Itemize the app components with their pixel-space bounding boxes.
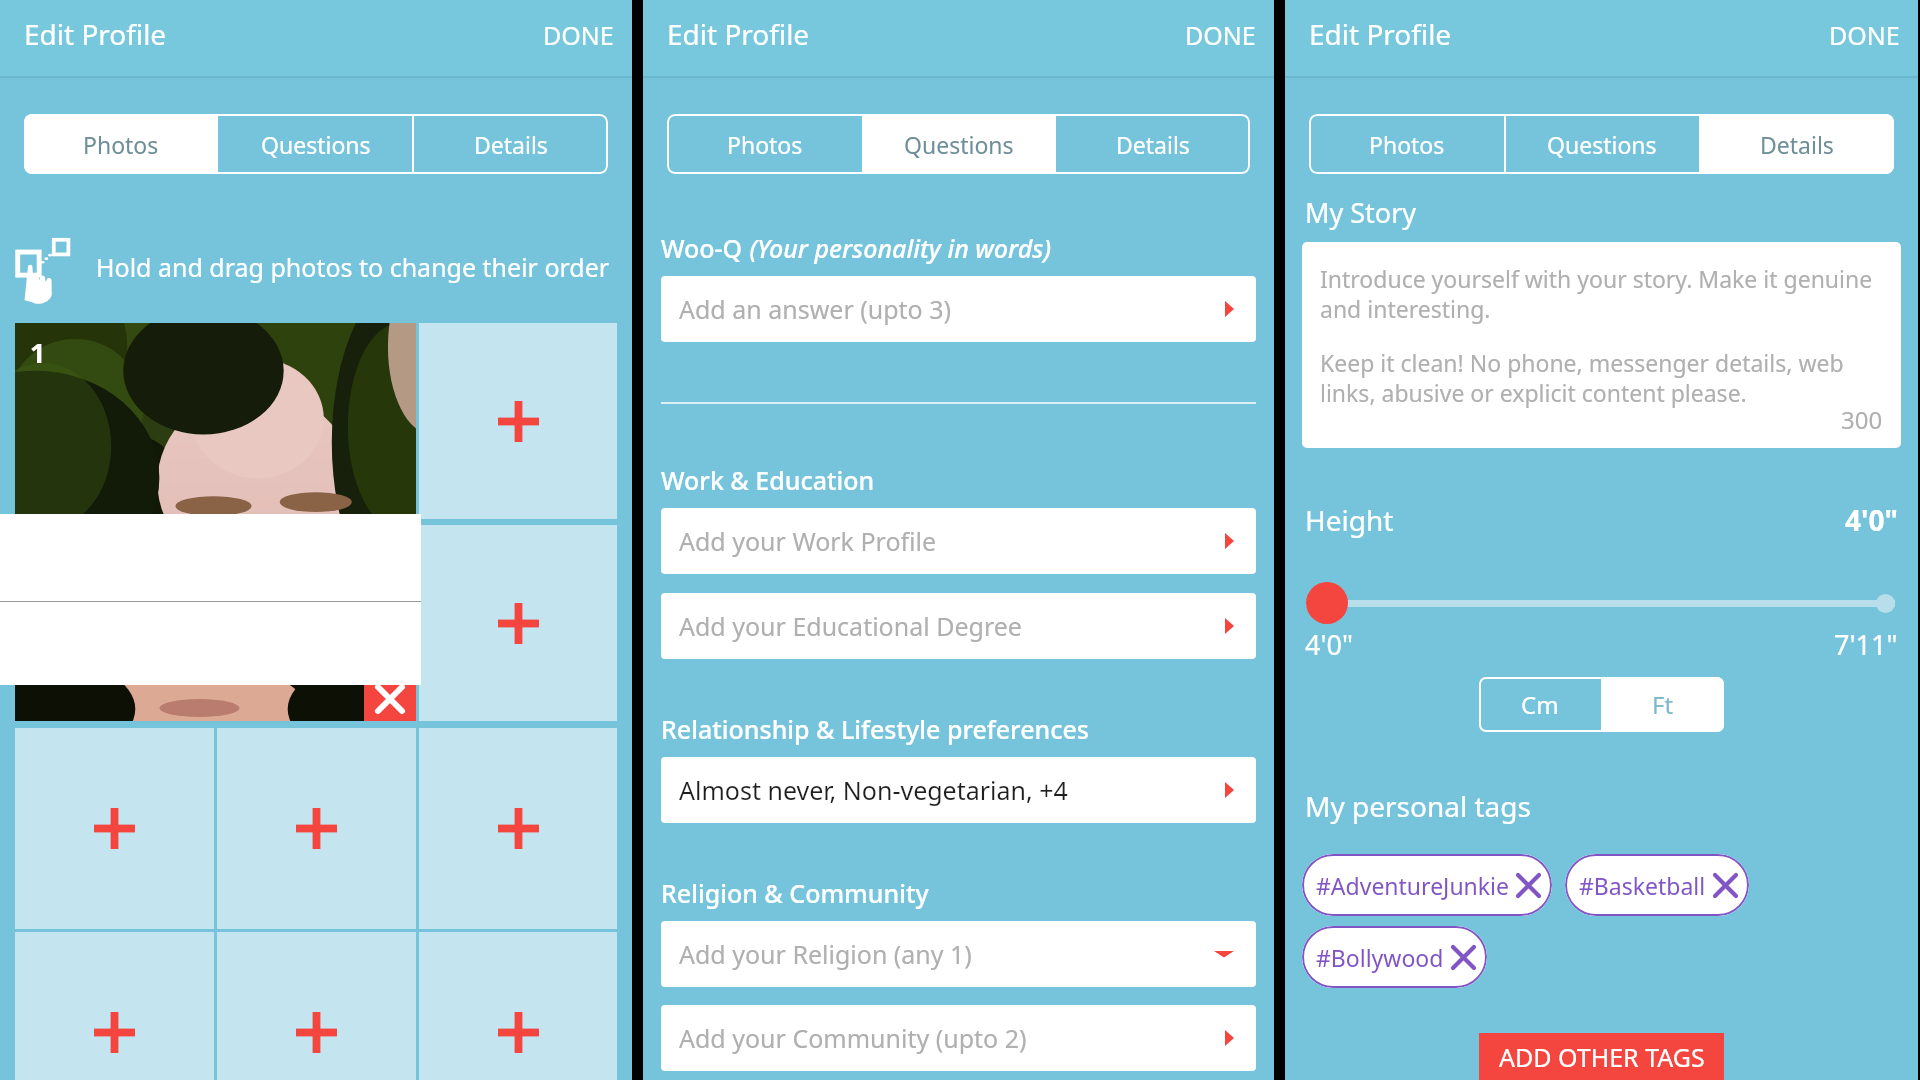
button[interactable]: ADD OTHER TAGS: [1479, 1033, 1724, 1080]
staticText: Add an answer (upto 3): [679, 292, 1225, 326]
staticText: Work & Education: [661, 463, 875, 497]
staticText: Edit Profile: [24, 15, 167, 53]
staticText: Add your Educational Degree: [679, 609, 1225, 643]
button[interactable]: #Bollywood: [1302, 926, 1487, 988]
button[interactable]: Remove photo: [364, 676, 416, 721]
staticText: 7'11": [1834, 626, 1898, 663]
button[interactable]: Questions: [218, 114, 413, 174]
button[interactable]: #Basketball: [1565, 854, 1749, 916]
staticText: Add your Work Profile: [679, 524, 1225, 558]
button[interactable]: DONE: [517, 0, 632, 78]
staticText: 4'0": [1305, 626, 1353, 663]
staticText: Add your Community (upto 2): [679, 1021, 1225, 1055]
staticText: Questions: [904, 129, 1014, 160]
button[interactable]: Add photo: [419, 323, 617, 519]
staticText: Details: [474, 129, 548, 160]
staticText: Details: [1760, 129, 1834, 160]
button[interactable]: Questions: [862, 114, 1056, 174]
staticText: Questions: [261, 129, 371, 160]
button[interactable]: Add your Work Profile: [661, 508, 1256, 574]
button[interactable]: DONE: [1159, 0, 1274, 78]
button[interactable]: Ft: [1601, 677, 1724, 732]
staticText: #AdventureJunkie: [1316, 870, 1509, 901]
button[interactable]: Details: [413, 114, 608, 174]
staticText: Height: [1305, 501, 1394, 539]
button[interactable]: Add an answer (upto 3): [661, 276, 1256, 342]
staticText: Photos: [83, 129, 159, 160]
staticText: (Your personality in words): [743, 231, 1052, 265]
staticText: Add your Religion (any 1): [679, 937, 1214, 971]
button[interactable]: Add photo: [419, 525, 617, 721]
staticText: #Basketball: [1579, 870, 1706, 901]
button[interactable]: Details: [1699, 114, 1894, 174]
staticText: Hold and drag photos to change their ord…: [96, 250, 610, 284]
staticText: ADD OTHER TAGS: [1499, 1040, 1705, 1074]
button[interactable]: Add photo: [217, 728, 416, 929]
staticText: 1: [30, 334, 46, 371]
button[interactable]: Photos: [1309, 114, 1504, 174]
staticText: Introduce yourself with your story. Make…: [1320, 263, 1887, 325]
staticText: Edit Profile: [667, 15, 810, 53]
button[interactable]: Add photo: [15, 932, 214, 1080]
staticText: My personal tags: [1305, 787, 1531, 825]
staticText: Photos: [727, 129, 803, 160]
staticText: My Story: [1305, 194, 1417, 231]
button[interactable]: 1: [15, 323, 416, 721]
staticText: 300: [1841, 403, 1883, 436]
button[interactable]: #AdventureJunkie: [1302, 854, 1552, 916]
staticText: #Bollywood: [1316, 942, 1444, 973]
button[interactable]: Almost never, Non-vegetarian, +4: [661, 757, 1256, 823]
staticText: Cm: [1521, 688, 1559, 721]
button[interactable]: Add photo: [419, 728, 617, 929]
button[interactable]: Cm: [1479, 677, 1601, 732]
button[interactable]: Add your Educational Degree: [661, 593, 1256, 659]
staticText: 4'0": [1845, 501, 1898, 539]
staticText: Religion & Community: [661, 876, 929, 910]
staticText: Woo-Q: [661, 231, 743, 265]
staticText: DONE: [1829, 18, 1900, 52]
button[interactable]: Add your Religion (any 1): [661, 921, 1256, 987]
staticText: Photos: [1369, 129, 1445, 160]
staticText: DONE: [1185, 18, 1256, 52]
button[interactable]: Add photo: [419, 932, 617, 1080]
staticText: DONE: [543, 18, 614, 52]
staticText: Details: [1116, 129, 1190, 160]
staticText: Keep it clean! No phone, messenger detai…: [1320, 347, 1887, 409]
staticText: Questions: [1547, 129, 1657, 160]
button[interactable]: Height slider: [1306, 582, 1348, 624]
button[interactable]: Questions: [1504, 114, 1699, 174]
staticText: Relationship & Lifestyle preferences: [661, 712, 1089, 746]
staticText: Ft: [1652, 688, 1674, 721]
button[interactable]: Introduce yourself with your story. Make…: [1302, 242, 1901, 448]
button[interactable]: Photos: [667, 114, 862, 174]
button[interactable]: Photos: [24, 114, 218, 174]
button[interactable]: Add photo: [15, 728, 214, 929]
button[interactable]: DONE: [1803, 0, 1918, 78]
staticText: Edit Profile: [1309, 15, 1452, 53]
staticText: Almost never, Non-vegetarian, +4: [679, 773, 1225, 807]
button[interactable]: Add your Community (upto 2): [661, 1005, 1256, 1071]
button[interactable]: Details: [1056, 114, 1250, 174]
button[interactable]: Add photo: [217, 932, 416, 1080]
